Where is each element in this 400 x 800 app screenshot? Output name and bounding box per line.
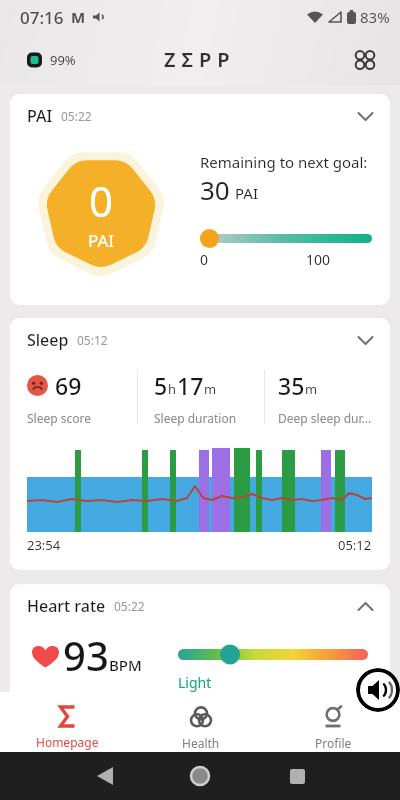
button[interactable]: PAI — [10, 94, 390, 305]
staticText: Heart rate — [27, 595, 106, 617]
staticText: 05:12 — [77, 332, 108, 348]
staticText: 5 — [154, 370, 168, 401]
staticText: 07:16 — [20, 6, 64, 29]
staticText: BPM — [109, 655, 142, 675]
staticText: PAI — [88, 229, 115, 252]
staticText: Deep sleep dur... — [278, 410, 372, 426]
button[interactable]: Profile — [267, 692, 400, 752]
staticText: Profile — [315, 735, 352, 751]
staticText: Homepage — [36, 734, 99, 750]
staticText: Remaining to next goal: — [200, 152, 368, 172]
staticText: 23:54 — [27, 536, 61, 554]
button[interactable] — [355, 50, 375, 70]
button[interactable]: Sleep — [10, 318, 390, 570]
staticText: 0 — [89, 172, 114, 229]
button[interactable] — [97, 767, 113, 785]
button[interactable] — [290, 769, 305, 784]
button[interactable]: Heart rate — [10, 584, 390, 744]
staticText: Health — [182, 735, 220, 751]
staticText: m — [305, 380, 318, 398]
button[interactable] — [356, 668, 400, 712]
staticText: M — [71, 7, 86, 27]
staticText: ZΣPP — [164, 46, 236, 73]
staticText: 100 — [306, 250, 331, 269]
staticText: 05:12 — [338, 536, 372, 554]
button[interactable]: Homepage — [0, 692, 134, 752]
button[interactable]: PAI — [27, 105, 373, 127]
staticText: 0 — [200, 250, 209, 269]
staticText: m — [204, 380, 217, 398]
staticText: 05:22 — [61, 108, 92, 124]
staticText: 93 — [63, 628, 109, 682]
button[interactable]: Sleep — [27, 329, 373, 351]
staticText: PAI — [27, 105, 53, 127]
staticText: h — [168, 380, 177, 398]
staticText: 99% — [50, 51, 76, 69]
staticText: PAI — [235, 183, 258, 203]
button[interactable] — [190, 766, 210, 786]
button[interactable]: Heart rate — [27, 595, 373, 617]
button[interactable]: Health — [134, 692, 267, 752]
staticText: 35 — [278, 370, 305, 401]
staticText: 17 — [177, 370, 204, 401]
staticText: 05:22 — [114, 598, 145, 614]
staticText: 30 — [200, 172, 230, 207]
staticText: Sleep — [27, 329, 69, 351]
staticText: 83% — [360, 7, 390, 27]
staticText: 69 — [55, 370, 82, 401]
staticText: Sleep duration — [154, 410, 237, 426]
staticText: Light — [178, 673, 212, 692]
button[interactable]: 99% — [26, 51, 76, 69]
staticText: Sleep score — [27, 410, 91, 426]
